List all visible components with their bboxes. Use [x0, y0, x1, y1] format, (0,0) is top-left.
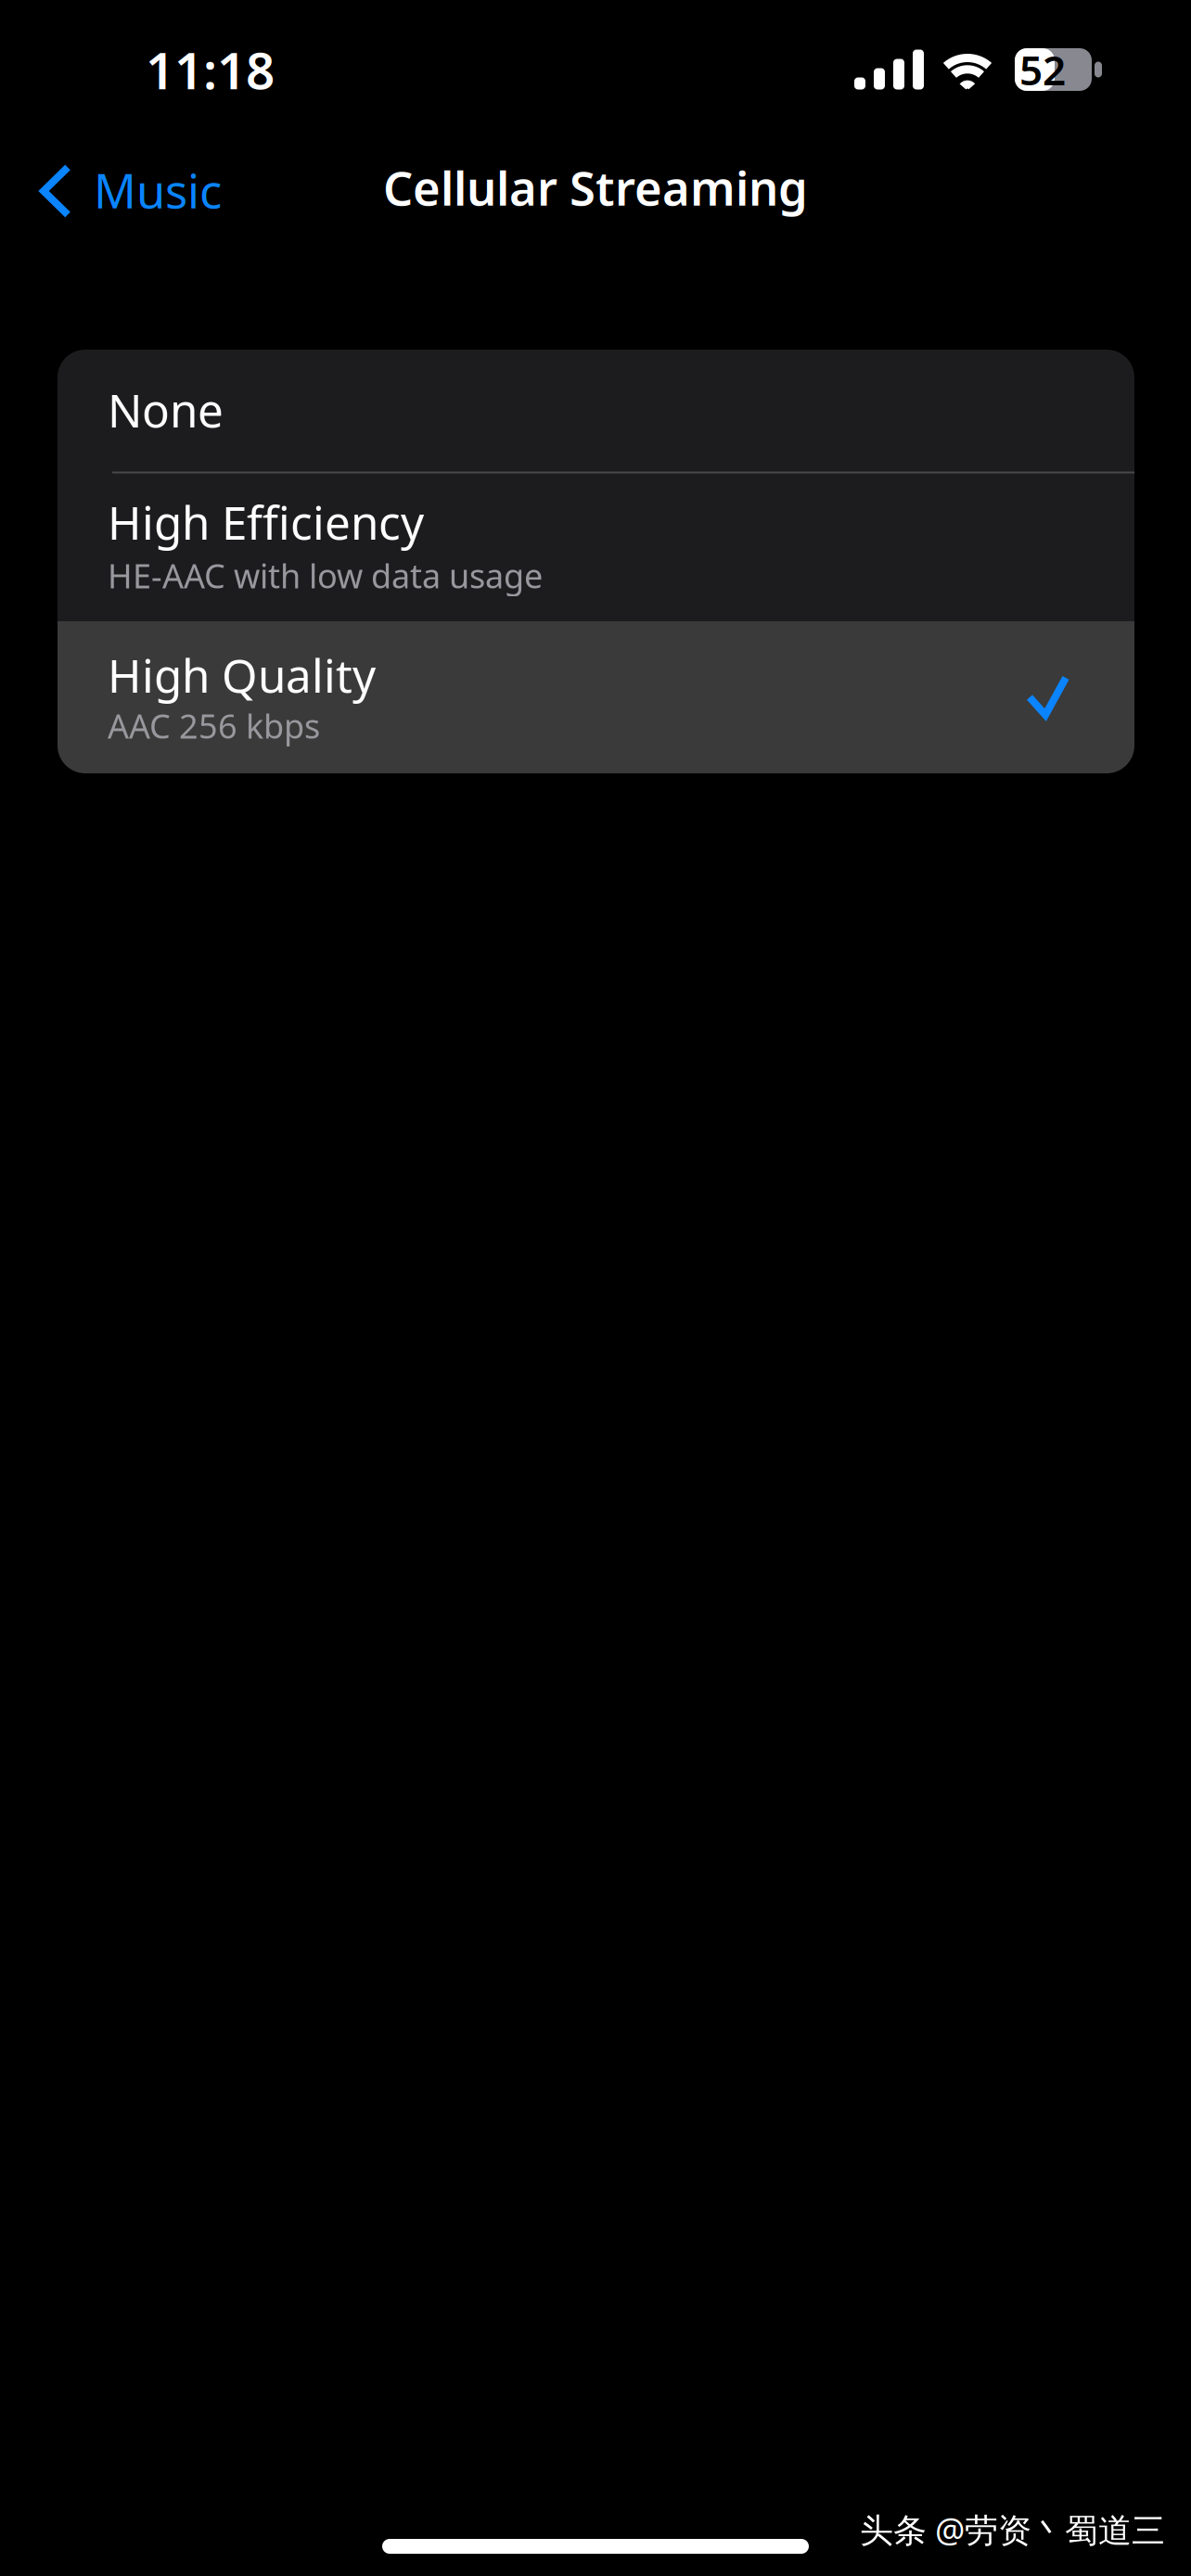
staticText: High Efficiency: [108, 491, 424, 552]
button[interactable]: High Efficiency: [58, 474, 1134, 621]
staticText: 52: [1019, 42, 1066, 97]
staticText: None: [108, 379, 224, 440]
staticText: Cellular Streaming: [383, 156, 808, 219]
staticText: 11:18: [146, 36, 275, 103]
staticText: High Quality: [108, 644, 376, 705]
staticText: Music: [94, 159, 222, 221]
button[interactable]: Back to Music: [0, 140, 244, 235]
staticText: AAC 256 kbps: [108, 703, 320, 748]
staticText: 头条 @劳资丶蜀道三: [860, 2507, 1165, 2552]
staticText: HE-AAC with low data usage: [108, 553, 543, 597]
button[interactable]: High Quality: [58, 621, 1134, 773]
button[interactable]: None: [58, 350, 1134, 471]
